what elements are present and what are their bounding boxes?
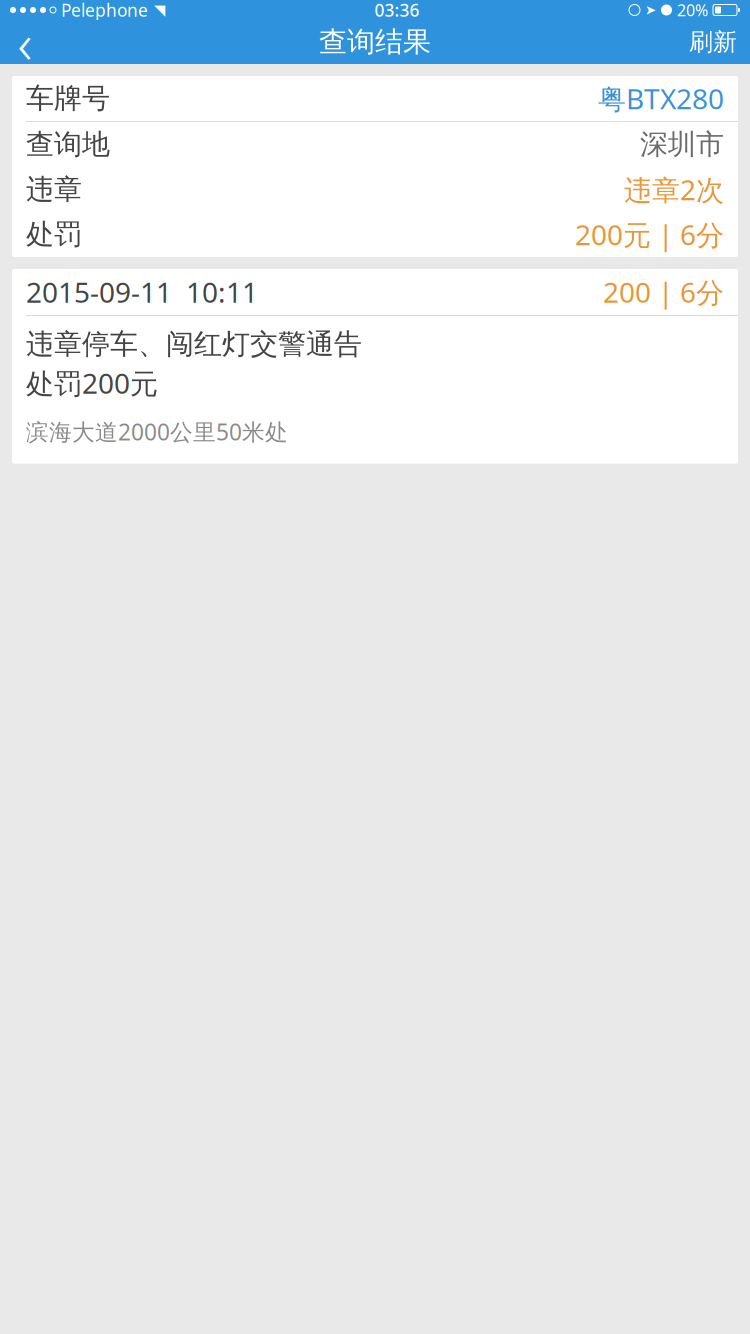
- button[interactable]: Back: [0, 20, 50, 64]
- staticText: 查询结果: [319, 25, 431, 59]
- staticText: 查询地: [26, 127, 110, 162]
- button[interactable]: 2015-09-11 10:11: [12, 269, 738, 464]
- staticText: ‹: [17, 5, 32, 79]
- staticText: 违章2次: [624, 171, 724, 208]
- staticText: 违章: [26, 172, 82, 207]
- staticText: 2015-09-11 10:11: [26, 273, 258, 311]
- staticText: ➤: [645, 2, 656, 17]
- staticText: 深圳市: [640, 127, 724, 162]
- staticText: 刷新: [689, 27, 737, 57]
- staticText: 处罚: [26, 217, 82, 252]
- staticText: 03:36: [374, 0, 419, 21]
- staticText: 滨海大道2000公里50米处: [26, 417, 288, 447]
- staticText: 20%: [677, 0, 708, 21]
- staticText: 粤BTX280: [598, 80, 724, 117]
- button[interactable]: 刷新: [676, 20, 750, 64]
- staticText: 违章停车、闯红灯交警通告: [26, 327, 362, 361]
- staticText: 200元 | 6分: [575, 216, 724, 253]
- staticText: ◥: [154, 2, 165, 18]
- staticText: Pelephone: [61, 0, 148, 21]
- staticText: 车牌号: [26, 81, 110, 116]
- staticText: 处罚200元: [26, 364, 158, 402]
- staticText: 200 | 6分: [603, 273, 724, 311]
